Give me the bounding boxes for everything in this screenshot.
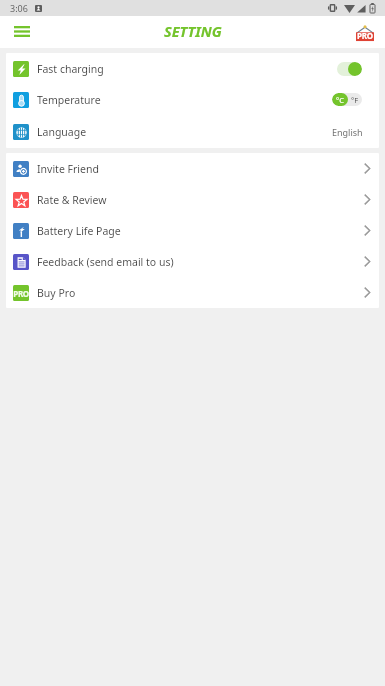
staticText: PRO [13, 288, 29, 299]
button[interactable]: Menu [0, 16, 44, 48]
button[interactable]: Temperature [6, 84, 379, 116]
staticText: Invite Friend [37, 162, 99, 176]
staticText: °C [336, 95, 344, 105]
staticText: Rate & Review [37, 193, 107, 207]
button[interactable]: Buy Pro [347, 16, 385, 48]
staticText: English [332, 126, 363, 138]
button[interactable]: Fast charging [6, 53, 379, 84]
button[interactable]: Language [6, 116, 379, 148]
button[interactable]: Battery Life Page [6, 215, 379, 246]
staticText: Feedback (send email to us) [37, 255, 174, 269]
button[interactable]: Invite Friend [6, 153, 379, 184]
staticText: Battery Life Page [37, 224, 121, 238]
staticText: Temperature [37, 93, 101, 107]
staticText: PRO [357, 30, 373, 41]
staticText: Fast charging [37, 62, 104, 76]
staticText: SETTING [164, 21, 222, 41]
staticText: Language [37, 125, 87, 139]
button[interactable]: Fast charging toggle [337, 62, 362, 76]
button[interactable]: Rate & Review [6, 184, 379, 215]
button[interactable]: Temperature unit [332, 93, 362, 106]
staticText: 3:06 [10, 2, 28, 14]
button[interactable]: PRO [6, 277, 379, 308]
button[interactable]: Feedback (send email to us) [6, 246, 379, 277]
staticText: Buy Pro [37, 286, 76, 300]
staticText: °F [351, 95, 359, 105]
